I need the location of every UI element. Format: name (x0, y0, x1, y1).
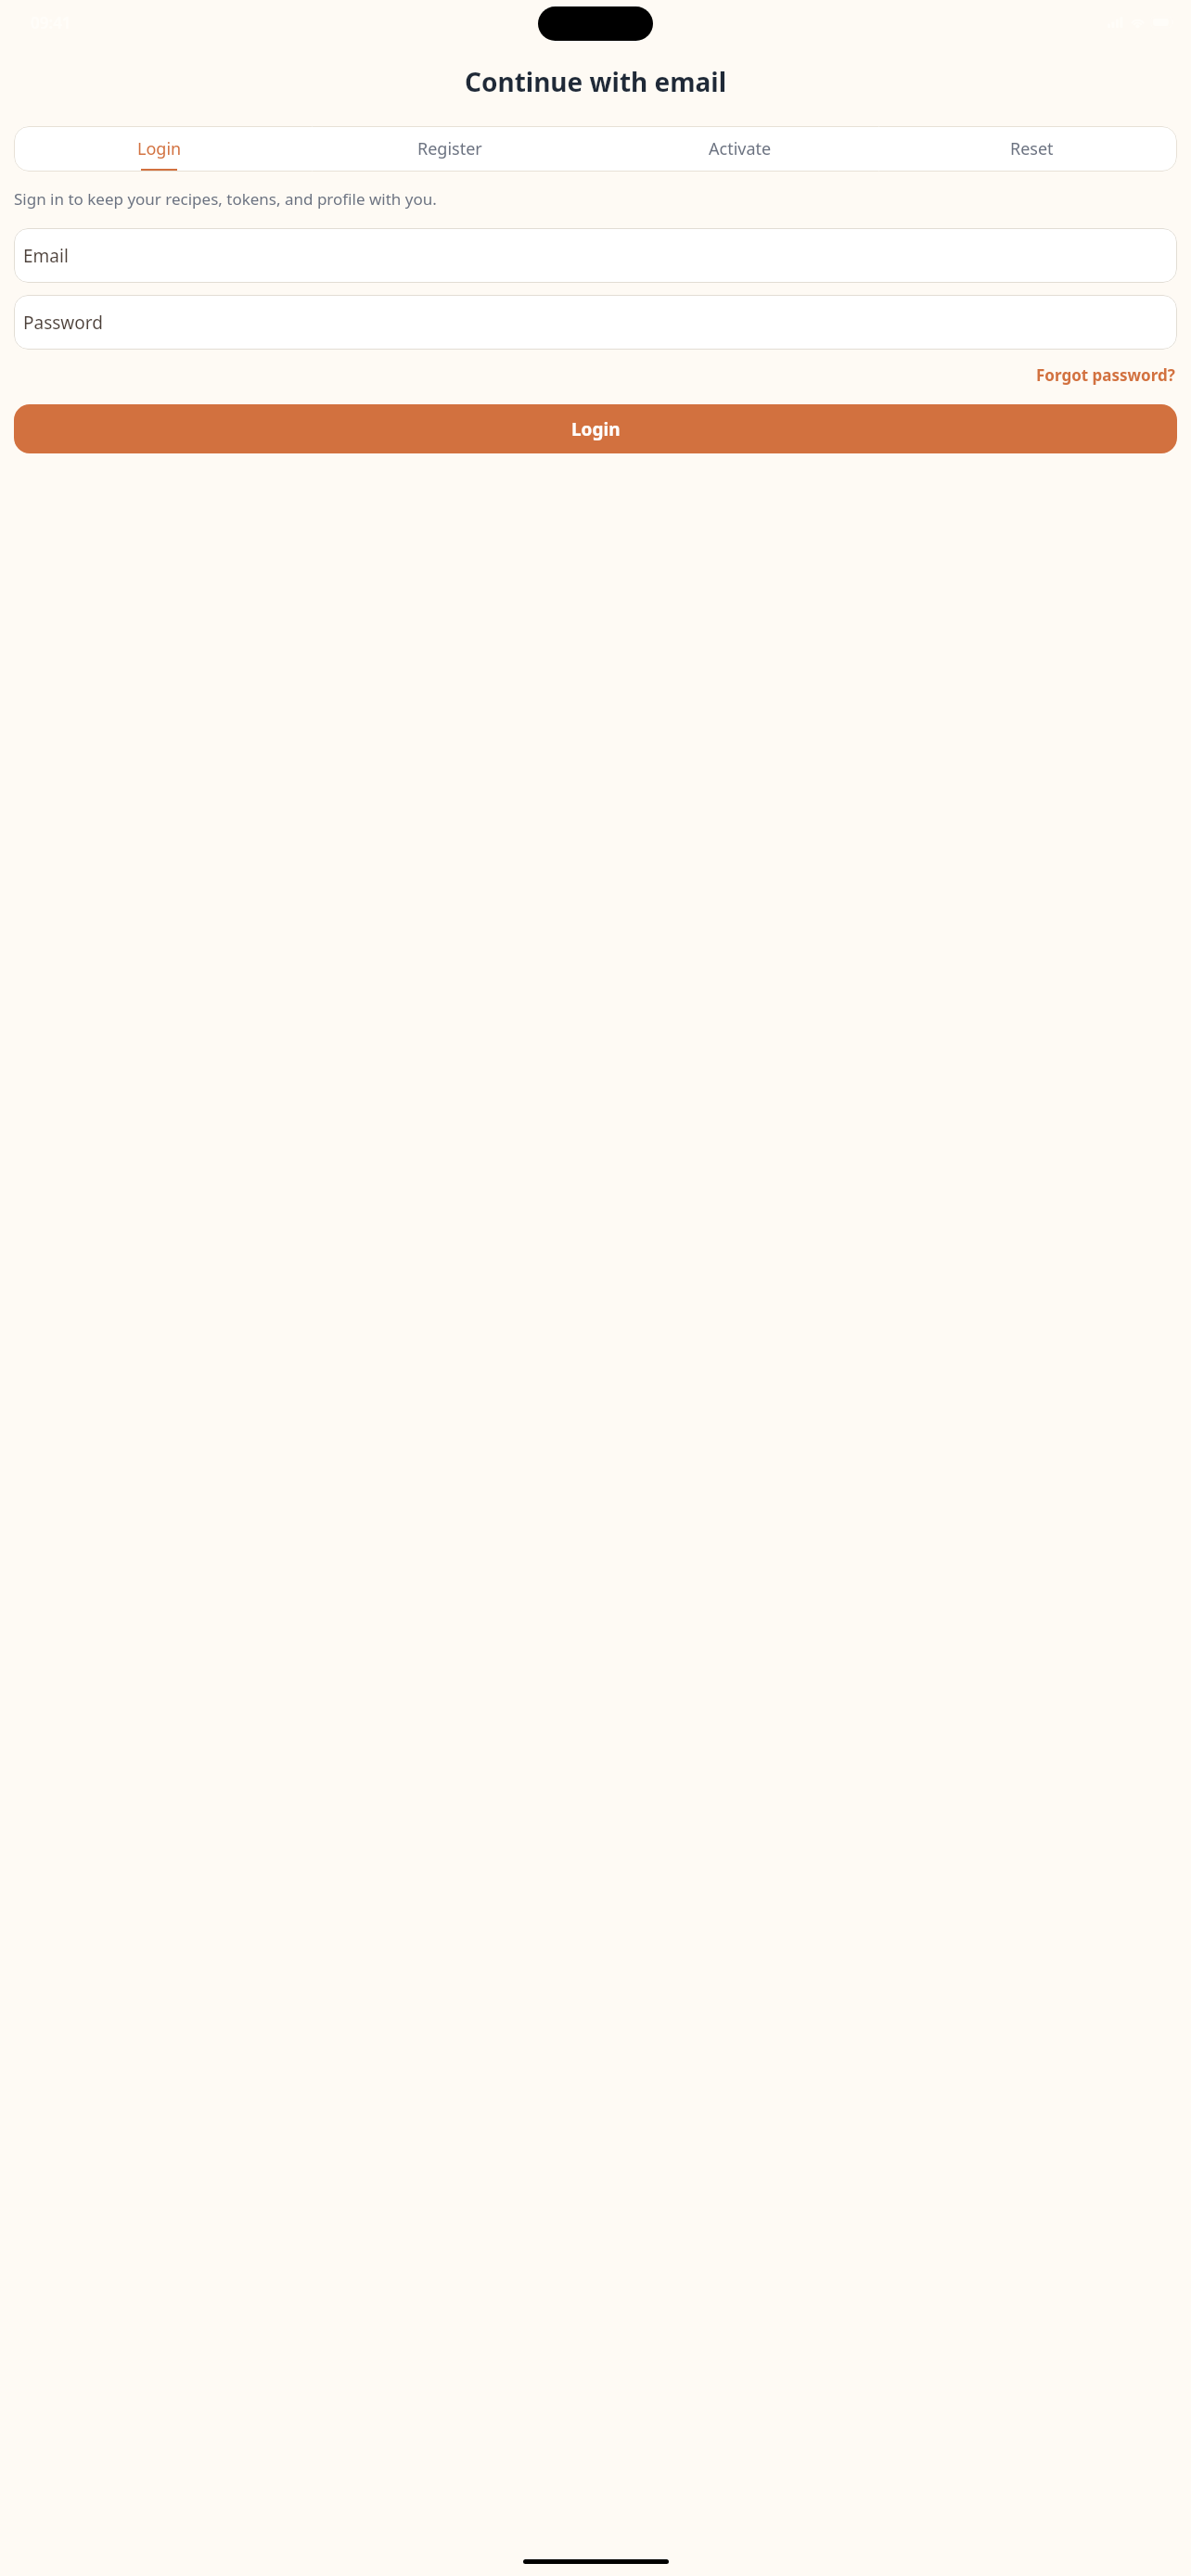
button[interactable]: Login (14, 126, 304, 172)
button[interactable]: Password (14, 295, 1177, 350)
staticText: Login (571, 417, 621, 441)
staticText: Continue with email (0, 64, 1191, 99)
staticText: Activate (709, 137, 772, 160)
staticText: Email (23, 244, 69, 268)
staticText: Sign in to keep your recipes, tokens, an… (14, 188, 1177, 210)
staticText: Forgot password? (1036, 364, 1175, 386)
staticText: Password (23, 311, 103, 335)
staticText: Register (417, 137, 482, 160)
button[interactable]: Register (304, 126, 595, 172)
button[interactable]: Activate (595, 126, 886, 172)
button[interactable]: Email (14, 228, 1177, 283)
button[interactable]: Reset (886, 126, 1177, 172)
staticText: Reset (1010, 137, 1054, 160)
staticText: Login (137, 137, 182, 160)
button[interactable]: Login (14, 404, 1177, 453)
button[interactable]: Forgot password? (1034, 361, 1177, 389)
